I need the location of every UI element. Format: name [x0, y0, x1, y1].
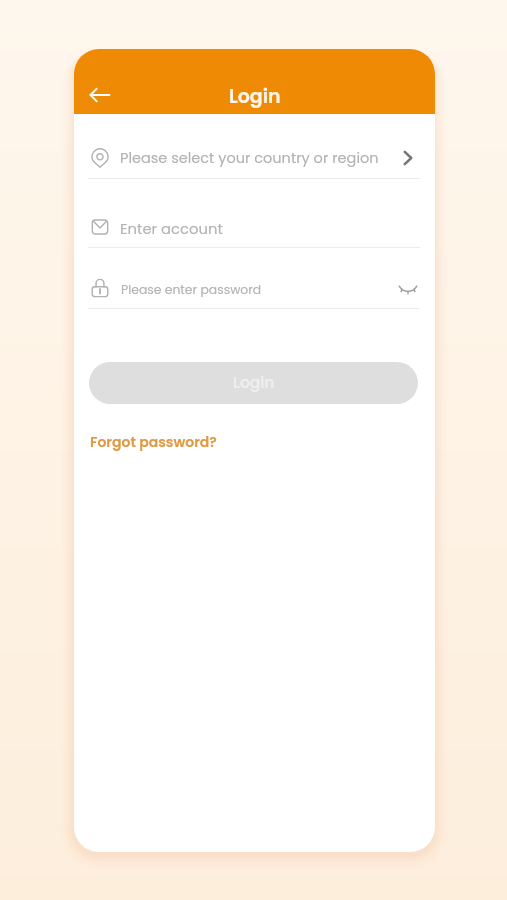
button[interactable]: Please enter password [88, 262, 390, 309]
button[interactable]: Show password [393, 273, 423, 303]
button[interactable]: Forgot password? [89, 430, 218, 454]
staticText: Enter account [120, 218, 223, 239]
button[interactable]: Login [89, 362, 418, 404]
button[interactable]: Select country or region [393, 143, 423, 173]
button[interactable]: Enter account [88, 199, 420, 247]
staticText: Please select your country or region [120, 148, 379, 168]
button[interactable]: Select your country or region [88, 130, 390, 179]
staticText: Login [229, 83, 281, 110]
button[interactable]: Back [82, 77, 118, 113]
staticText: Forgot password? [90, 432, 217, 452]
staticText: Please enter password [121, 281, 262, 298]
staticText: Login [233, 372, 275, 394]
